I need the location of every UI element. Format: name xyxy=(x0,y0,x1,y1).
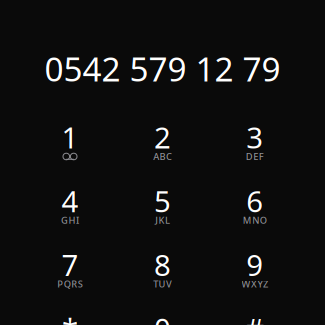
staticText: 0542 579 12 79 xyxy=(44,46,280,91)
staticText: 5 xyxy=(154,181,171,220)
staticText: 9 xyxy=(246,245,263,284)
button[interactable]: 7 xyxy=(25,235,115,297)
button[interactable]: 4 xyxy=(25,171,115,233)
staticText: WXYZ xyxy=(242,278,268,290)
staticText: MNO xyxy=(243,214,267,226)
button[interactable]: 1 xyxy=(25,107,115,169)
staticText: PQRS xyxy=(57,278,83,290)
button[interactable]: 0 xyxy=(118,298,208,325)
staticText: 7 xyxy=(61,245,78,284)
staticText: 8 xyxy=(154,245,171,284)
staticText: 4 xyxy=(61,181,78,220)
staticText: * xyxy=(62,309,78,325)
button[interactable]: # xyxy=(210,298,300,325)
button[interactable]: 8 xyxy=(118,235,208,297)
staticText: TUV xyxy=(153,278,172,290)
staticText: 1 xyxy=(61,118,78,157)
staticText: 6 xyxy=(246,181,263,220)
button[interactable]: 3 xyxy=(210,107,300,169)
staticText: 2 xyxy=(154,118,171,157)
staticText: ABC xyxy=(153,150,172,163)
staticText: JKL xyxy=(155,214,170,226)
staticText: # xyxy=(245,309,264,325)
staticText: GHI xyxy=(61,214,79,226)
staticText: 0 xyxy=(154,309,171,325)
staticText: 3 xyxy=(246,118,263,157)
button[interactable]: 5 xyxy=(118,171,208,233)
button[interactable]: 9 xyxy=(210,235,300,297)
button[interactable]: * xyxy=(25,298,115,325)
staticText: DEF xyxy=(246,150,264,163)
button[interactable]: 2 xyxy=(118,107,208,169)
button[interactable]: 6 xyxy=(210,171,300,233)
